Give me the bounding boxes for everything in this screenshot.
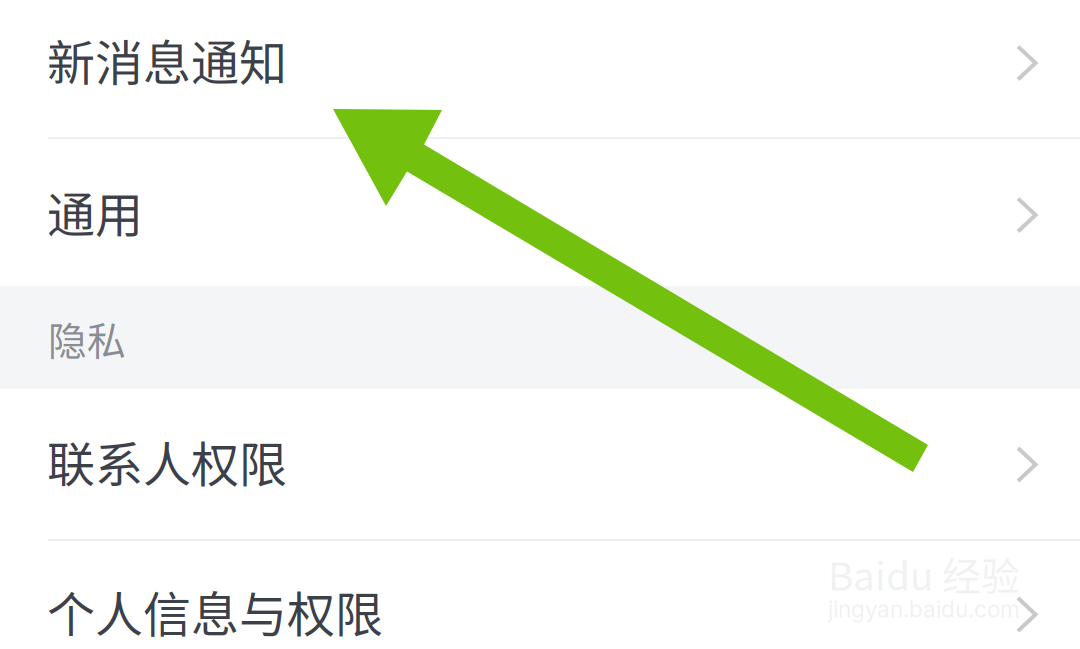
staticText: 通用 <box>47 177 143 246</box>
button[interactable]: 个人信息与权限 <box>0 541 1080 649</box>
button[interactable]: 新消息通知 <box>0 0 1080 137</box>
staticText: 个人信息与权限 <box>47 576 383 646</box>
staticText: 隐私 <box>48 310 126 366</box>
staticText: Baidu 经验 <box>828 546 1020 602</box>
button[interactable]: 通用 <box>0 139 1080 286</box>
button[interactable]: 联系人权限 <box>0 389 1080 539</box>
staticText: jingyan.baidu.com <box>828 596 1020 623</box>
staticText: 新消息通知 <box>47 25 287 94</box>
staticText: 联系人权限 <box>47 426 287 496</box>
